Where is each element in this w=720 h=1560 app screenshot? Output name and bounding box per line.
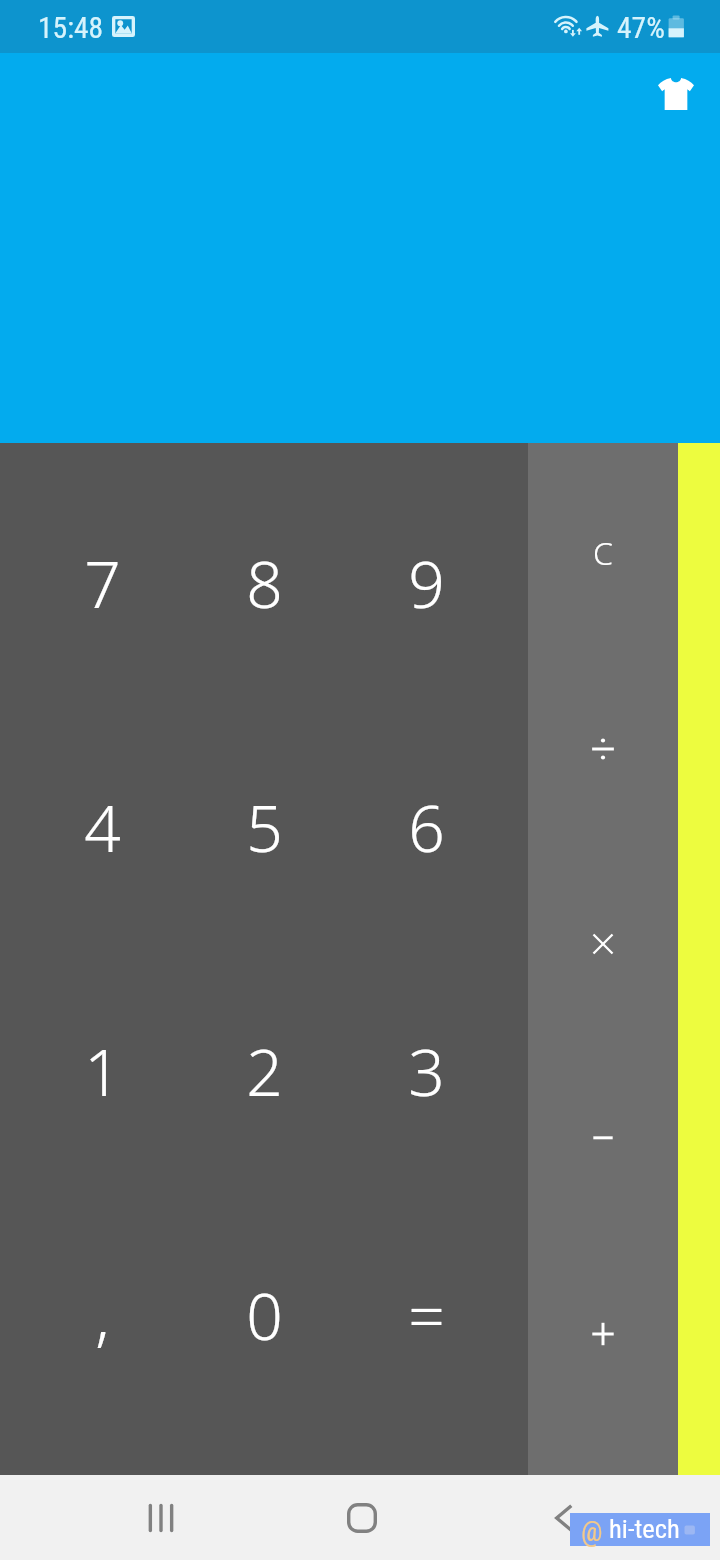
staticText: C <box>593 531 613 575</box>
button[interactable]: 4 <box>21 705 183 949</box>
button[interactable]: Plus <box>528 1236 678 1431</box>
staticText: 1 <box>84 1028 121 1115</box>
button[interactable]: Clear <box>528 455 678 651</box>
button[interactable]: 3 <box>345 949 507 1193</box>
button[interactable]: Minus <box>528 1041 678 1236</box>
staticText: 8 <box>246 540 283 627</box>
staticText: 4 <box>84 784 121 871</box>
button[interactable]: Back <box>527 1475 600 1560</box>
button[interactable]: 2 <box>183 949 345 1193</box>
staticText: @ <box>581 1515 603 1548</box>
button[interactable]: 6 <box>345 705 507 949</box>
staticText: 7 <box>84 540 121 627</box>
button[interactable]: 7 <box>21 461 183 705</box>
button[interactable]: Divide <box>528 651 678 846</box>
button[interactable]: 1 <box>21 949 183 1193</box>
staticText: 9 <box>408 540 445 627</box>
button[interactable]: 0 <box>183 1193 345 1437</box>
staticText: , <box>95 1272 110 1359</box>
staticText: 47% <box>617 11 665 46</box>
staticText: 3 <box>408 1028 445 1115</box>
button[interactable]: Home <box>325 1475 398 1560</box>
staticText: 6 <box>408 784 445 871</box>
button[interactable]: Multiply <box>528 846 678 1041</box>
button[interactable]: Recent apps <box>124 1475 197 1560</box>
staticText: hi-tech <box>609 1513 680 1544</box>
staticText: 5 <box>246 784 283 871</box>
staticText: 15:48 <box>38 11 104 46</box>
button[interactable]: , <box>21 1193 183 1437</box>
staticText: = <box>408 1272 445 1359</box>
button[interactable]: = <box>345 1193 507 1437</box>
button[interactable]: Change theme <box>658 78 694 110</box>
button[interactable]: 5 <box>183 705 345 949</box>
button[interactable]: 9 <box>345 461 507 705</box>
staticText: 0 <box>246 1272 283 1359</box>
button[interactable]: 8 <box>183 461 345 705</box>
staticText: 2 <box>246 1028 283 1115</box>
